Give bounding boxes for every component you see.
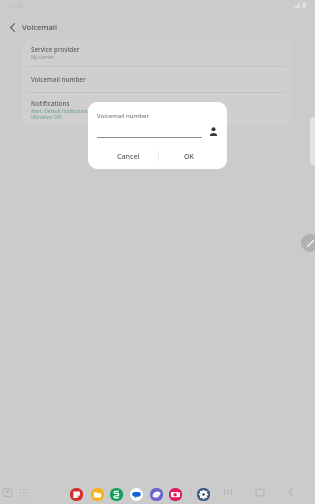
button[interactable]: App (110, 488, 123, 501)
button[interactable]: Service provider (22, 40, 292, 66)
button[interactable]: App (169, 488, 182, 501)
button[interactable]: App (130, 488, 143, 501)
staticText: OK (184, 151, 195, 161)
button[interactable]: Notifications (22, 93, 292, 125)
button[interactable]: Voicemail number (22, 67, 292, 92)
staticText: 10:00 (9, 2, 24, 10)
button[interactable]: App (150, 488, 163, 501)
button[interactable]: Recent apps (1, 486, 13, 498)
staticText: Alert: Default notification Vibration: O… (31, 108, 88, 120)
staticText: Service provider (31, 45, 80, 54)
button[interactable]: Air command (301, 234, 315, 252)
button[interactable]: Select contact (205, 123, 221, 139)
button[interactable]: App (197, 488, 210, 501)
button[interactable]: All apps (17, 486, 29, 498)
button[interactable]: Back (283, 485, 297, 499)
staticText: Voicemail (22, 22, 57, 32)
button[interactable]: Cancel (98, 143, 158, 169)
button[interactable]: Home (253, 485, 267, 499)
staticText: Cancel (117, 151, 140, 161)
button[interactable]: Navigate up (3, 18, 22, 37)
button[interactable]: OK (159, 143, 220, 169)
staticText: My carrier (31, 54, 54, 61)
staticText: Notifications (31, 99, 70, 108)
staticText: Voicemail number (97, 111, 149, 119)
staticText: Voicemail number (31, 75, 86, 84)
button[interactable]: App (91, 488, 104, 501)
button[interactable]: App (70, 488, 83, 501)
